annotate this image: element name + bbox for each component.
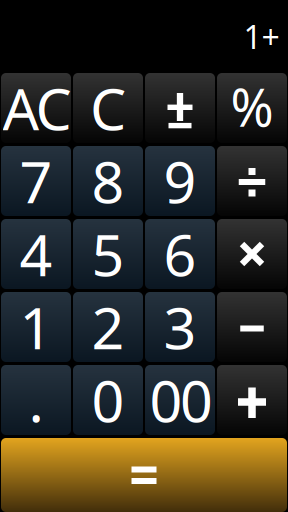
button[interactable]: 8 — [73, 146, 143, 216]
staticText: 3 — [163, 289, 196, 365]
button[interactable]: % — [217, 73, 287, 143]
staticText: . — [28, 362, 43, 438]
staticText: 4 — [19, 216, 52, 292]
staticText: 7 — [19, 143, 52, 219]
button[interactable]: 5 — [73, 219, 143, 289]
button[interactable]: Minus — [217, 292, 287, 362]
staticText: AC — [2, 70, 71, 146]
staticText: 00 — [149, 362, 213, 438]
button[interactable]: 1 — [1, 292, 71, 362]
button[interactable]: 2 — [73, 292, 143, 362]
button[interactable]: Plus — [217, 365, 287, 435]
button[interactable]: 9 — [145, 146, 215, 216]
staticText: 0 — [91, 362, 124, 438]
button[interactable]: . — [1, 365, 71, 435]
button[interactable]: Divide — [217, 146, 287, 216]
button[interactable]: 4 — [1, 219, 71, 289]
button[interactable]: Equals — [1, 438, 287, 512]
button[interactable]: Plus minus — [145, 73, 215, 143]
staticText: 2 — [91, 289, 124, 365]
button[interactable]: 6 — [145, 219, 215, 289]
button[interactable]: 00 — [145, 365, 215, 435]
button[interactable]: C — [73, 73, 143, 143]
staticText: 1+ — [243, 15, 279, 58]
staticText: C — [90, 70, 126, 146]
staticText: 1 — [19, 289, 52, 365]
button[interactable]: 0 — [73, 365, 143, 435]
staticText: 5 — [91, 216, 124, 292]
staticText: % — [230, 72, 273, 141]
button[interactable]: Multiply — [217, 219, 287, 289]
staticText: 6 — [163, 216, 196, 292]
button[interactable]: AC — [1, 73, 71, 143]
button[interactable]: 7 — [1, 146, 71, 216]
staticText: 8 — [91, 143, 124, 219]
button[interactable]: 3 — [145, 292, 215, 362]
staticText: 9 — [163, 143, 196, 219]
